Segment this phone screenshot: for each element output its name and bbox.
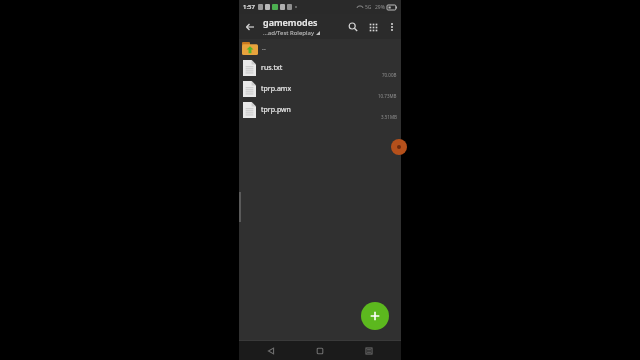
button[interactable]: Search <box>343 17 363 37</box>
button[interactable]: Recent apps <box>352 341 386 360</box>
staticText: ...ad/Test Roleplay <box>263 29 314 37</box>
button[interactable]: Back <box>239 16 261 38</box>
button[interactable]: Action badge <box>391 139 407 155</box>
staticText: 5G <box>365 4 372 11</box>
staticText: gamemodes <box>263 16 318 28</box>
staticText: 29% <box>375 4 385 11</box>
button[interactable]: gamemodes <box>263 16 343 37</box>
button[interactable]: Add <box>361 302 389 330</box>
staticText: rus.txt <box>261 63 283 73</box>
button[interactable]: More options <box>383 18 401 36</box>
button[interactable]: Back <box>254 341 288 360</box>
button[interactable]: tprp.pwn <box>239 99 401 120</box>
button[interactable]: tprp.amx <box>239 78 401 99</box>
button[interactable]: rus.txt <box>239 57 401 78</box>
button[interactable]: Change view <box>363 17 383 37</box>
staticText: 70.00B <box>382 72 397 78</box>
staticText: tprp.pwn <box>261 105 291 115</box>
button[interactable]: Home <box>303 341 337 360</box>
staticText: tprp.amx <box>261 84 292 94</box>
staticText: 10.73MB <box>378 93 397 99</box>
staticText: .. <box>262 43 266 53</box>
staticText: 3.51MB <box>381 114 397 120</box>
button[interactable]: .. <box>239 39 401 57</box>
staticText: 1:57 <box>243 3 255 11</box>
